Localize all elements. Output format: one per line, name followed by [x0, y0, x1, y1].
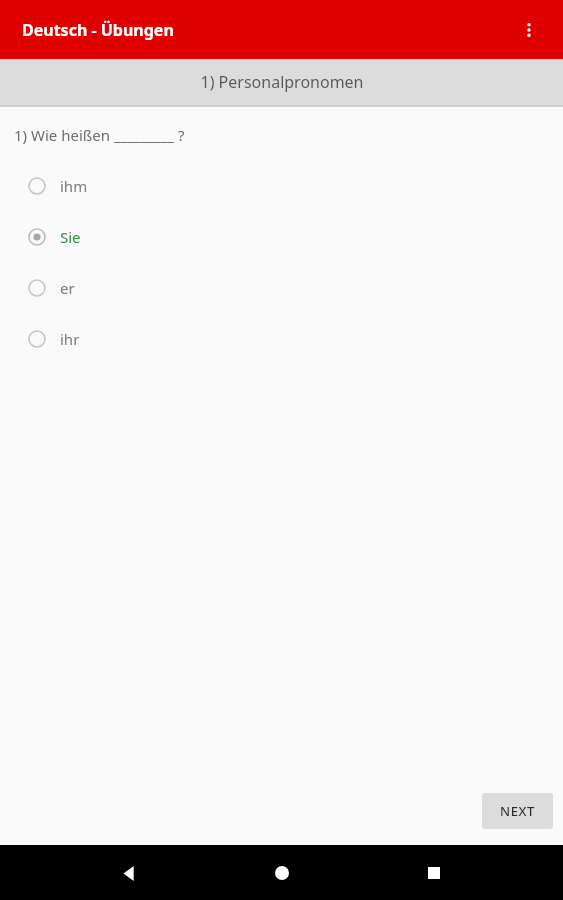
staticText: Deutsch - Übungen: [22, 19, 174, 41]
button[interactable]: Sie: [0, 211, 563, 262]
button[interactable]: Recent apps: [411, 850, 457, 896]
button[interactable]: NEXT: [482, 793, 553, 829]
button[interactable]: ihr: [0, 313, 563, 364]
button[interactable]: er: [0, 262, 563, 313]
staticText: NEXT: [500, 802, 535, 820]
staticText: er: [60, 278, 75, 298]
button[interactable]: Home: [259, 850, 305, 896]
staticText: 1) Personalpronomen: [200, 71, 364, 93]
staticText: ihm: [60, 176, 88, 196]
staticText: 1) Wie heißen: [14, 125, 114, 145]
staticText: ihr: [60, 329, 80, 349]
button[interactable]: ihm: [0, 160, 563, 211]
button[interactable]: More options: [509, 10, 549, 50]
button[interactable]: 1) Personalpronomen: [0, 59, 563, 105]
button[interactable]: Back: [106, 850, 152, 896]
staticText: _________: [114, 125, 174, 145]
staticText: Sie: [60, 227, 81, 247]
staticText: ?: [174, 125, 185, 145]
